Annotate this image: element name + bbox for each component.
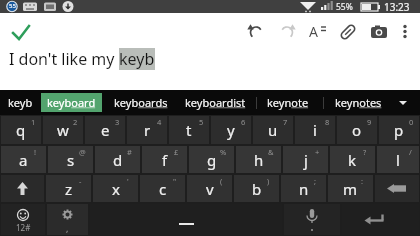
- button[interactable]: s: [48, 146, 93, 173]
- button[interactable]: n: [281, 175, 326, 202]
- button[interactable]: 12#: [1, 204, 45, 235]
- staticText: /: [409, 147, 412, 157]
- staticText: A: [309, 22, 318, 41]
- staticText: ;: [314, 176, 317, 186]
- button[interactable]: d: [95, 146, 140, 173]
- staticText: ": [173, 176, 177, 186]
- staticText: a: [19, 150, 28, 170]
- button[interactable]: [375, 175, 419, 202]
- staticText: £: [174, 147, 179, 157]
- staticText: -: [79, 176, 82, 186]
- button[interactable]: [90, 204, 282, 235]
- staticText: 6: [241, 117, 246, 127]
- staticText: e: [101, 120, 110, 140]
- button[interactable]: [366, 19, 392, 45]
- button[interactable]: a: [1, 146, 46, 173]
- staticText: keynotes: [335, 95, 382, 110]
- button[interactable]: o: [337, 116, 377, 144]
- button[interactable]: [342, 204, 419, 235]
- button[interactable]: j: [283, 146, 328, 173]
- staticText: l: [396, 150, 400, 170]
- staticText: 55: [9, 2, 16, 10]
- button[interactable]: [394, 19, 416, 41]
- staticText: keyboardist: [185, 95, 246, 110]
- staticText: 55%: [336, 1, 353, 13]
- button[interactable]: f: [142, 146, 187, 173]
- button[interactable]: [274, 19, 300, 45]
- button[interactable]: k: [330, 146, 375, 173]
- staticText: 0: [409, 117, 414, 127]
- staticText: I don't like my: [9, 48, 119, 70]
- staticText: g: [207, 150, 217, 170]
- button[interactable]: u: [253, 116, 293, 144]
- button[interactable]: b: [234, 175, 279, 202]
- button[interactable]: c: [140, 175, 185, 202]
- button[interactable]: g: [189, 146, 234, 173]
- staticText: n: [299, 179, 309, 199]
- staticText: v: [206, 179, 214, 199]
- staticText: +: [315, 147, 320, 157]
- staticText: q: [16, 120, 26, 140]
- staticText: i: [313, 120, 317, 140]
- button[interactable]: w: [43, 116, 83, 144]
- button[interactable]: keynote: [267, 95, 309, 110]
- staticText: !: [34, 147, 37, 157]
- staticText: m: [343, 179, 358, 199]
- button[interactable]: [243, 19, 269, 45]
- staticText: &: [268, 147, 274, 157]
- button[interactable]: keyboards: [114, 95, 168, 110]
- staticText: d: [113, 150, 123, 170]
- staticText: w: [57, 120, 69, 140]
- staticText: 13:23: [384, 0, 410, 13]
- staticText: 12#: [16, 222, 31, 233]
- staticText: keyboards: [114, 95, 168, 110]
- button[interactable]: e: [85, 116, 125, 144]
- button[interactable]: v: [187, 175, 232, 202]
- staticText: :: [361, 176, 364, 186]
- staticText: 4: [157, 117, 162, 127]
- button[interactable]: keyboard: [41, 93, 102, 112]
- staticText: o: [352, 120, 362, 140]
- button[interactable]: keyboardist: [185, 95, 246, 110]
- staticText: p: [394, 120, 404, 140]
- button[interactable]: h: [236, 146, 281, 173]
- staticText: 3: [115, 117, 120, 127]
- button[interactable]: t: [169, 116, 209, 144]
- button[interactable]: y: [211, 116, 251, 144]
- button[interactable]: p: [379, 116, 419, 144]
- staticText: z: [65, 179, 73, 199]
- button[interactable]: x: [93, 175, 138, 202]
- staticText: keyb: [119, 48, 155, 70]
- button[interactable]: keynotes: [335, 95, 382, 110]
- button[interactable]: ,: [47, 204, 88, 235]
- staticText: keyb: [8, 95, 33, 110]
- staticText: ?: [363, 147, 367, 157]
- button[interactable]: m: [328, 175, 373, 202]
- staticText: @: [79, 147, 86, 157]
- staticText: %: [220, 147, 227, 157]
- staticText: h: [254, 150, 264, 170]
- button[interactable]: [6, 19, 34, 47]
- button[interactable]: z: [46, 175, 91, 202]
- button[interactable]: [284, 204, 340, 235]
- button[interactable]: A: [304, 19, 330, 45]
- button[interactable]: [394, 94, 412, 112]
- staticText: 5: [199, 117, 204, 127]
- button[interactable]: q: [1, 116, 41, 144]
- button[interactable]: r: [127, 116, 167, 144]
- staticText: k: [348, 150, 357, 170]
- staticText: j: [304, 150, 308, 170]
- staticText: keyboard: [47, 95, 96, 110]
- button[interactable]: [1, 175, 44, 202]
- staticText: b: [252, 179, 262, 199]
- button[interactable]: [335, 19, 361, 45]
- button[interactable]: i: [295, 116, 335, 144]
- staticText: (: [220, 176, 223, 186]
- staticText: c: [159, 179, 167, 199]
- button[interactable]: keyb: [8, 95, 33, 110]
- staticText: 2: [73, 117, 78, 127]
- staticText: 9: [367, 117, 372, 127]
- button[interactable]: l: [377, 146, 419, 173]
- staticText: ,: [66, 222, 69, 234]
- staticText: 7: [283, 117, 288, 127]
